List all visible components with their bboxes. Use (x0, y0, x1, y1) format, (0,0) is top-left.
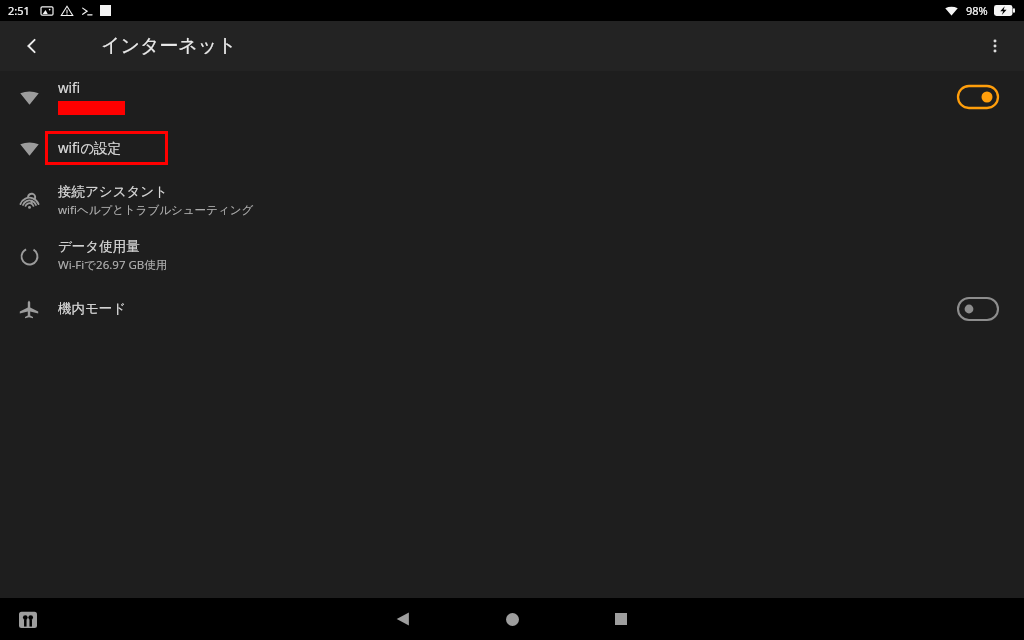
staticText: wifiヘルプとトラブルシューティング (58, 202, 254, 218)
staticText: インターネット (101, 34, 237, 58)
staticText: Wi-Fiで26.97 GB使用 (58, 257, 168, 273)
button[interactable]: データ使用量 (0, 228, 1024, 283)
button[interactable]: wifiの設定 (0, 122, 1024, 173)
button[interactable]: Back (11, 25, 53, 67)
button[interactable]: Back (386, 602, 420, 636)
staticText: 機内モード (58, 300, 127, 317)
staticText: 接続アシスタント (58, 183, 168, 200)
button[interactable]: wifi (0, 71, 1024, 122)
button[interactable]: 接続アシスタント (0, 173, 1024, 228)
button[interactable]: 機内モード (0, 283, 1024, 334)
button[interactable]: Home (495, 602, 529, 636)
button[interactable]: More options (975, 26, 1015, 66)
staticText: 2:51 (8, 3, 30, 18)
staticText: wifi (58, 79, 81, 97)
button[interactable]: Recent apps (604, 602, 638, 636)
staticText: データ使用量 (58, 238, 140, 255)
button[interactable]: Accessibility menu (12, 603, 44, 635)
staticText: wifiの設定 (58, 139, 122, 157)
staticText: 98% (966, 3, 988, 18)
